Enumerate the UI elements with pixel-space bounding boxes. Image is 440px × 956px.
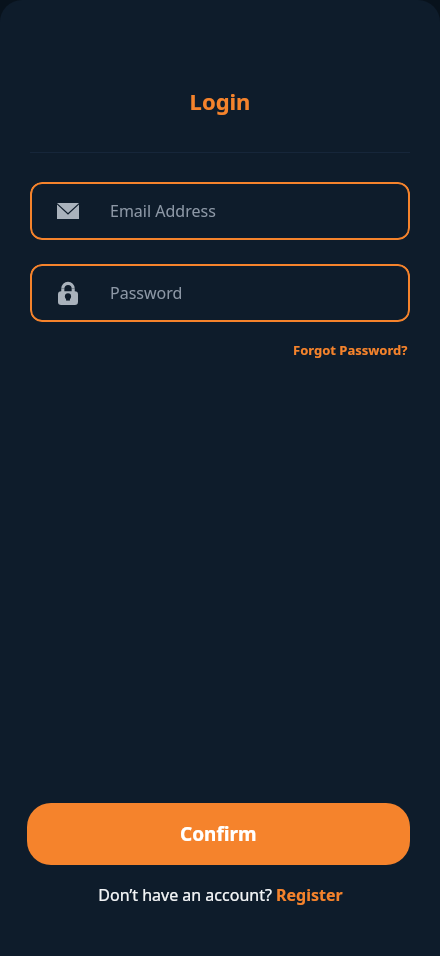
button[interactable]: Forgot Password? xyxy=(291,339,410,361)
staticText: Login xyxy=(0,86,440,116)
button[interactable]: Confirm xyxy=(27,803,410,865)
staticText: Email Address xyxy=(110,200,216,222)
staticText: Confirm xyxy=(180,821,257,847)
button[interactable]: Don’t have an account? Register xyxy=(94,882,347,908)
button[interactable]: Email Address xyxy=(30,182,410,240)
staticText: Forgot Password? xyxy=(293,341,408,359)
button[interactable]: Password xyxy=(30,264,410,322)
staticText: Don’t have an account? Register xyxy=(98,884,343,906)
staticText: Password xyxy=(110,282,183,304)
